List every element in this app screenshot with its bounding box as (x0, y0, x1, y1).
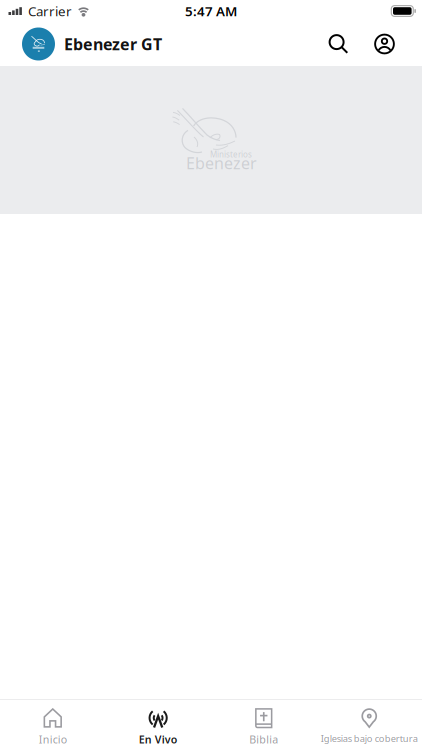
button[interactable]: Biblia (211, 700, 316, 750)
button[interactable]: Account (374, 33, 395, 54)
staticText: Ebenezer (186, 152, 257, 174)
staticText: Iglesias bajo cobertura (321, 732, 418, 745)
button[interactable]: Inicio (0, 700, 105, 750)
staticText: Biblia (249, 732, 278, 746)
button[interactable]: Ebenezer GT (22, 27, 55, 60)
button[interactable]: En Vivo (105, 700, 211, 750)
staticText: Ebenezer GT (64, 33, 162, 55)
staticText: Carrier (28, 2, 72, 20)
button[interactable]: Search (328, 33, 349, 54)
button[interactable]: Iglesias bajo cobertura (316, 700, 422, 750)
staticText: Inicio (39, 732, 67, 746)
staticText: 5:47 AM (185, 2, 237, 20)
staticText: Ministerios (210, 149, 252, 160)
staticText: En Vivo (139, 732, 178, 746)
